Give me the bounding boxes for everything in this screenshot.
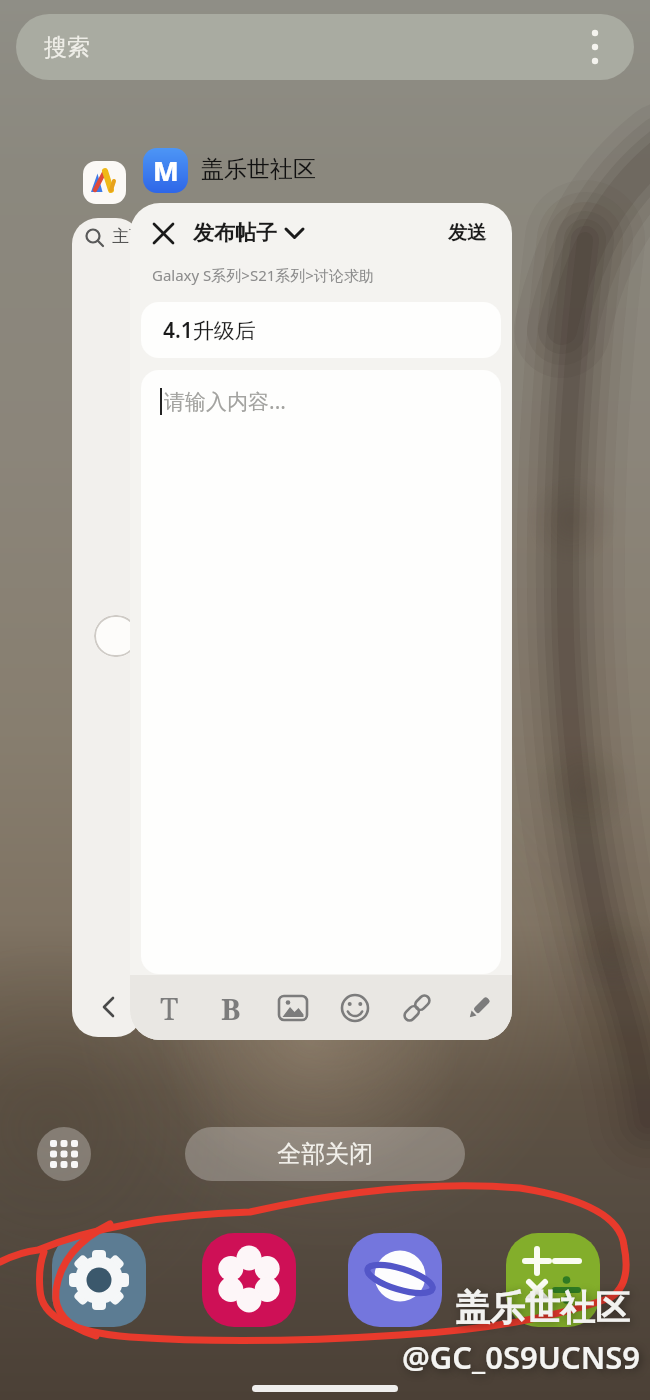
- staticText: 盖乐世社区: [201, 155, 316, 184]
- button[interactable]: M: [143, 148, 188, 193]
- button[interactable]: 发布帖子: [193, 220, 304, 246]
- button[interactable]: 4.1升级后: [141, 302, 501, 358]
- button[interactable]: 请输入内容...: [141, 370, 501, 974]
- staticText: 请输入内容...: [164, 387, 286, 416]
- button[interactable]: [202, 1233, 296, 1327]
- button[interactable]: 发送: [442, 215, 500, 251]
- button[interactable]: [52, 1233, 146, 1327]
- staticText: 发布帖子: [193, 220, 277, 246]
- button[interactable]: [394, 976, 440, 1040]
- staticText: @GC_0S9UCNS9: [402, 1336, 641, 1378]
- staticText: 搜索: [44, 33, 90, 62]
- staticText: 全部关闭: [277, 1139, 373, 1169]
- staticText: T: [160, 988, 179, 1029]
- staticText: 主页: [112, 226, 146, 247]
- button[interactable]: 全部关闭: [185, 1127, 465, 1181]
- button[interactable]: [332, 976, 378, 1040]
- staticText: M: [153, 152, 179, 189]
- staticText: Galaxy S系列>S21系列>讨论求助: [152, 265, 374, 285]
- button[interactable]: [506, 1233, 600, 1327]
- button[interactable]: [37, 1127, 91, 1181]
- button[interactable]: [270, 976, 316, 1040]
- staticText: 4.1升级后: [163, 316, 256, 345]
- staticText: 发送: [448, 221, 486, 245]
- staticText: B: [221, 989, 241, 1028]
- staticText: 盖乐世社区: [455, 1286, 630, 1330]
- button[interactable]: [142, 212, 184, 254]
- button[interactable]: [578, 22, 612, 72]
- button[interactable]: T: [146, 976, 192, 1040]
- button[interactable]: 搜索: [16, 14, 634, 80]
- button[interactable]: [348, 1233, 442, 1327]
- button[interactable]: B: [208, 976, 254, 1040]
- button[interactable]: [456, 976, 502, 1040]
